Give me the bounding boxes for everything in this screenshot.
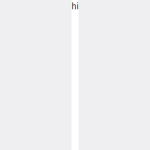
staticText: hi [71, 0, 78, 12]
